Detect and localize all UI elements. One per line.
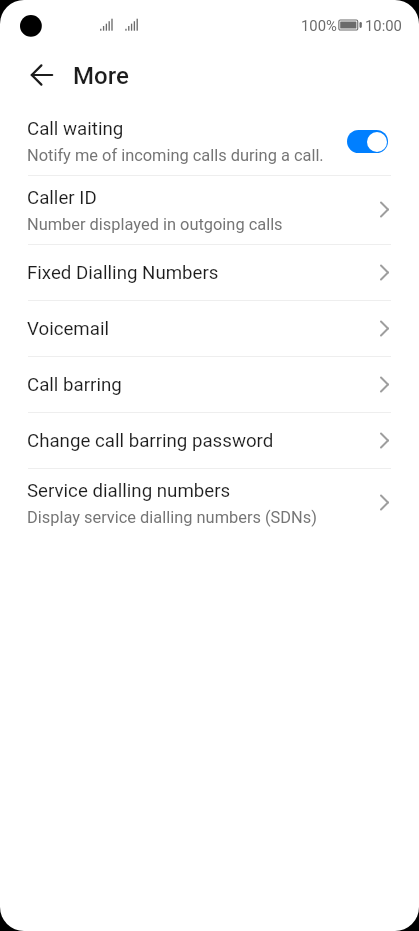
- button[interactable]: Call waiting: [0, 107, 419, 175]
- button[interactable]: Voicemail: [0, 301, 419, 356]
- button[interactable]: Caller ID: [0, 176, 419, 244]
- staticText: Change call barring password: [27, 430, 274, 452]
- button[interactable]: Service dialling numbers: [0, 469, 419, 537]
- staticText: 10:00: [365, 17, 402, 34]
- staticText: Call waiting: [27, 118, 124, 140]
- staticText: Voicemail: [27, 318, 110, 340]
- staticText: Display service dialling numbers (SDNs): [27, 508, 317, 527]
- button[interactable]: Back: [18, 51, 66, 99]
- staticText: Call barring: [27, 374, 122, 396]
- button[interactable]: Change call barring password: [0, 413, 419, 468]
- staticText: Caller ID: [27, 187, 97, 209]
- button[interactable]: Call barring: [0, 357, 419, 412]
- staticText: More: [73, 62, 129, 90]
- button[interactable]: Fixed Dialling Numbers: [0, 245, 419, 300]
- staticText: 100%: [301, 17, 337, 34]
- staticText: Service dialling numbers: [27, 480, 231, 502]
- staticText: Fixed Dialling Numbers: [27, 262, 219, 284]
- button[interactable]: Call waiting toggle: [347, 130, 388, 153]
- staticText: Number displayed in outgoing calls: [27, 215, 283, 234]
- staticText: Notify me of incoming calls during a cal…: [27, 146, 324, 165]
